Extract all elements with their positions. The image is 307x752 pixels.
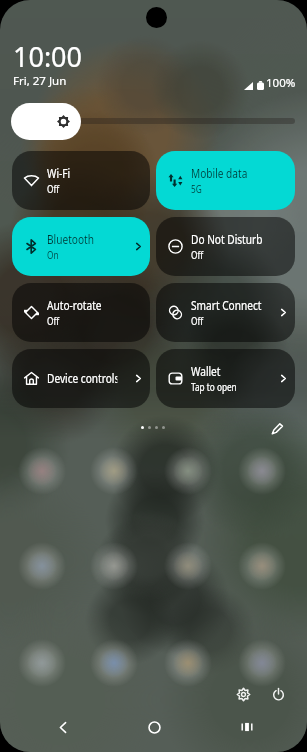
staticText: Off bbox=[191, 248, 203, 262]
button[interactable]: Wallet bbox=[156, 349, 295, 408]
button[interactable]: Power bbox=[269, 685, 287, 703]
staticText: Bluetooth bbox=[47, 231, 95, 248]
staticText: On bbox=[47, 248, 59, 262]
button[interactable]: Auto-rotate bbox=[12, 283, 150, 342]
staticText: Fri, 27 Jun bbox=[13, 73, 67, 89]
button[interactable]: Home bbox=[103, 705, 205, 749]
staticText: Tap to open bbox=[191, 380, 237, 394]
staticText: 100% bbox=[266, 75, 296, 91]
button[interactable]: Smart Connect bbox=[156, 283, 295, 342]
staticText: Wi-Fi bbox=[47, 165, 70, 182]
button[interactable]: Edit bbox=[267, 418, 287, 438]
staticText: Mobile data bbox=[191, 165, 248, 182]
staticText: 10:00 bbox=[13, 38, 83, 75]
staticText: Off bbox=[191, 314, 203, 328]
staticText: Smart Connect bbox=[191, 297, 261, 314]
button[interactable]: Mobile data bbox=[156, 151, 295, 210]
staticText: Off bbox=[47, 314, 59, 328]
button[interactable]: Back bbox=[0, 705, 103, 749]
staticText: Device controls bbox=[47, 370, 117, 387]
button[interactable]: Device controls bbox=[12, 349, 150, 408]
button[interactable]: Wi-Fi bbox=[12, 151, 150, 210]
button[interactable]: Bluetooth bbox=[12, 217, 150, 276]
button[interactable]: Brightness bbox=[11, 103, 81, 140]
button[interactable]: Settings bbox=[234, 685, 252, 703]
staticText: 5G bbox=[191, 182, 202, 196]
staticText: Auto-rotate bbox=[47, 297, 102, 314]
staticText: Off bbox=[47, 182, 59, 196]
staticText: Do Not Disturb bbox=[191, 231, 263, 248]
staticText: Wallet bbox=[191, 363, 221, 380]
button[interactable]: Recents bbox=[205, 705, 307, 749]
button[interactable]: Do Not Disturb bbox=[156, 217, 295, 276]
